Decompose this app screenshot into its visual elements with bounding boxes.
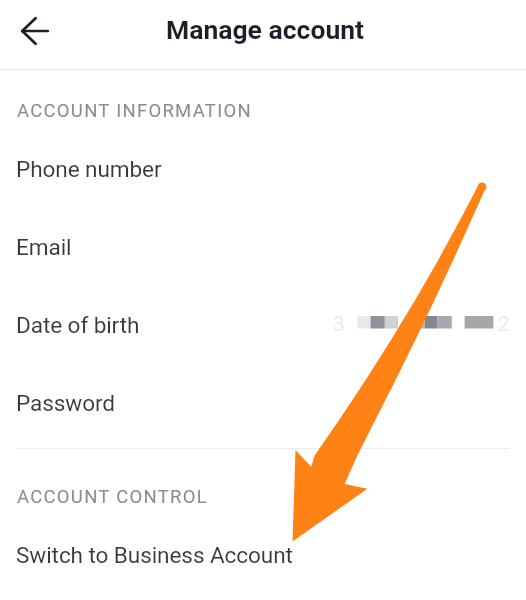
staticText: Manage account bbox=[166, 14, 365, 45]
staticText: Email bbox=[16, 234, 72, 260]
staticText: Password bbox=[16, 390, 115, 416]
button[interactable]: Email bbox=[0, 208, 526, 286]
staticText: Phone number bbox=[16, 156, 162, 182]
button[interactable]: Back bbox=[11, 7, 59, 55]
staticText: 3 bbox=[333, 312, 345, 337]
staticText: Date of birth bbox=[16, 312, 140, 338]
staticText: Switch to Business Account bbox=[16, 542, 293, 568]
button[interactable]: Switch to Business Account bbox=[0, 516, 526, 594]
button[interactable]: Date of birth bbox=[0, 286, 526, 364]
staticText: 2 bbox=[498, 312, 510, 337]
staticText: ACCOUNT CONTROL bbox=[17, 486, 208, 508]
button[interactable]: Password bbox=[0, 364, 526, 442]
staticText: ACCOUNT INFORMATION bbox=[17, 100, 252, 122]
button[interactable]: Phone number bbox=[0, 130, 526, 208]
